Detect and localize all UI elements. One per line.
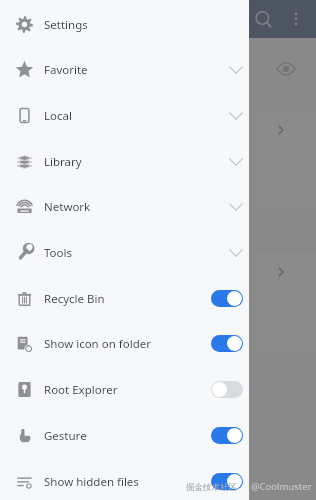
staticText: Show hidden files — [44, 474, 139, 490]
staticText: Tools — [44, 245, 72, 261]
button[interactable]: Show icon on folder — [211, 335, 243, 352]
button[interactable]: Gesture — [211, 427, 243, 444]
staticText: Recycle Bin — [44, 291, 105, 307]
button[interactable]: More options — [288, 11, 304, 27]
staticText: Local — [44, 108, 72, 124]
button[interactable]: Show hidden files — [0, 459, 249, 500]
button[interactable]: Root Explorer — [211, 381, 243, 398]
button[interactable]: Root Explorer — [0, 367, 249, 412]
staticText: Settings — [44, 17, 88, 33]
button[interactable]: Show icon on folder — [0, 321, 249, 366]
staticText: Show icon on folder — [44, 336, 151, 352]
staticText: 掘金技术社区 — [186, 482, 237, 493]
button[interactable]: Search — [254, 10, 273, 29]
button[interactable]: Local — [0, 93, 249, 138]
button[interactable]: Recycle Bin — [211, 290, 243, 307]
button[interactable]: Tools — [0, 230, 249, 275]
staticText: Network — [44, 199, 91, 215]
staticText: Root Explorer — [44, 382, 118, 398]
button[interactable]: Recycle Bin — [0, 276, 249, 321]
staticText: Favorite — [44, 62, 88, 78]
staticText: Library — [44, 154, 82, 170]
staticText: Gesture — [44, 428, 87, 444]
staticText: @Coolmuster — [251, 480, 312, 493]
button[interactable]: Settings — [0, 2, 249, 47]
button[interactable]: Favorite — [0, 47, 249, 92]
button[interactable]: Network — [0, 184, 249, 229]
button[interactable]: Library — [0, 139, 249, 184]
button[interactable]: Gesture — [0, 413, 249, 458]
button[interactable]: Show hidden files — [211, 473, 243, 490]
